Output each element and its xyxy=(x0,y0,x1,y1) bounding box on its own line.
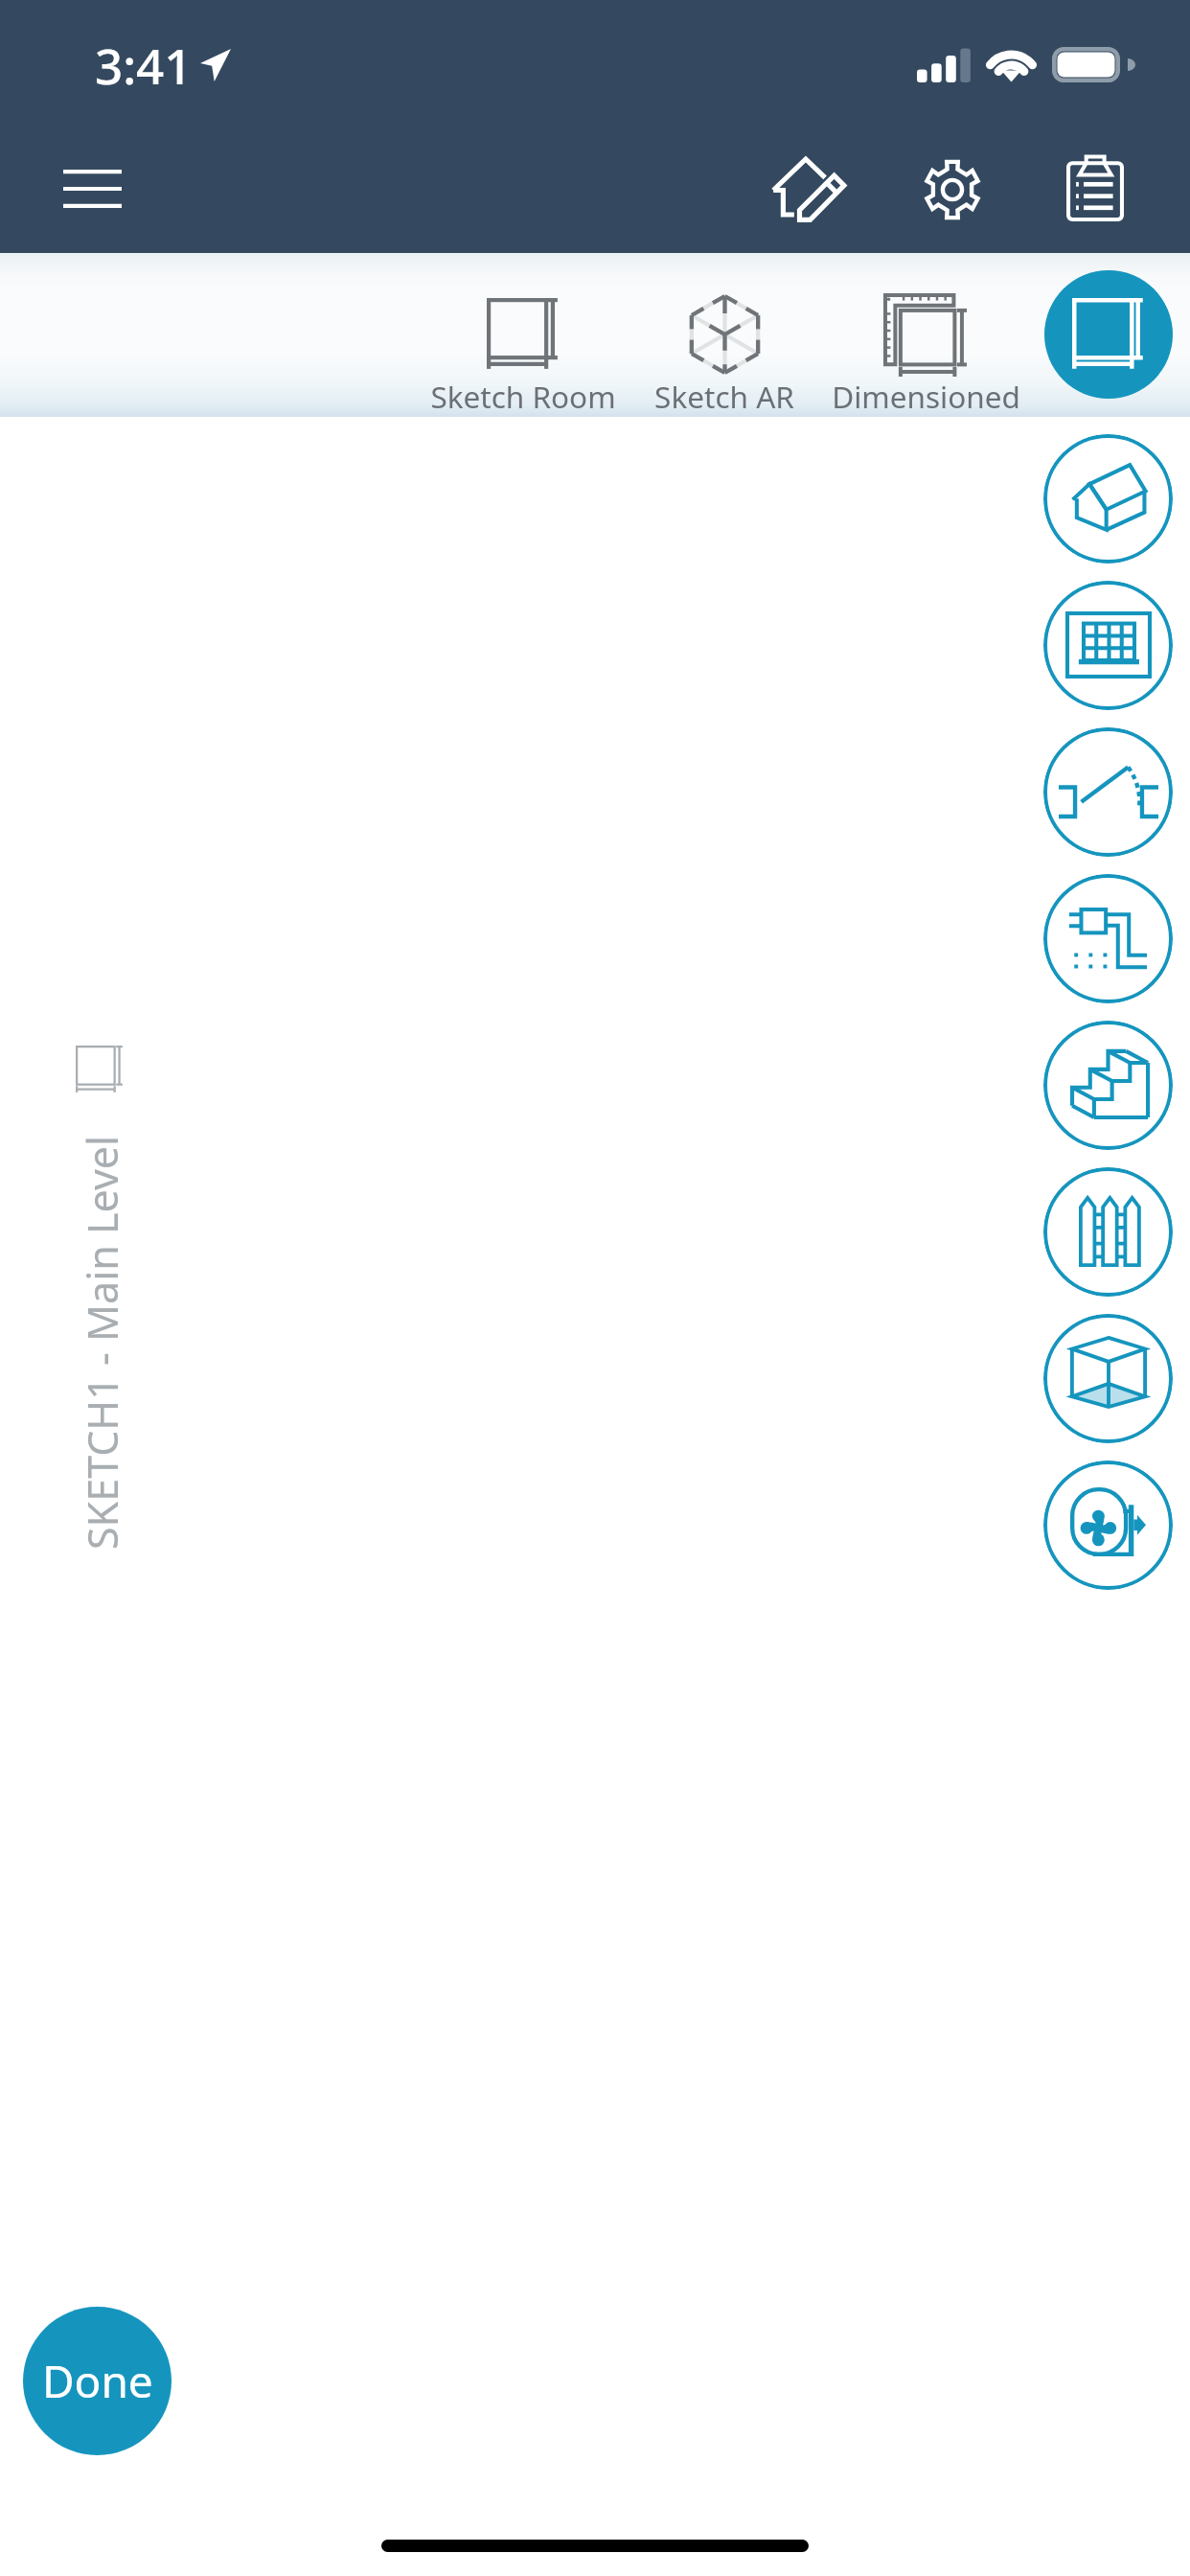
button[interactable]: Dimensioned xyxy=(820,254,1031,417)
staticText: Sketch AR xyxy=(654,376,794,417)
staticText: Dimensioned xyxy=(832,376,1020,417)
button[interactable]: Electrical xyxy=(1043,874,1173,1003)
button[interactable]: Fence xyxy=(1043,1167,1173,1297)
staticText: Done xyxy=(42,2351,153,2411)
button[interactable]: Menu xyxy=(34,132,150,245)
button[interactable]: Sketch Room xyxy=(418,254,629,417)
button[interactable]: Ventilation xyxy=(1043,1460,1173,1590)
button[interactable]: Volume xyxy=(1043,1314,1173,1443)
button[interactable]: Roof xyxy=(1043,434,1173,563)
button[interactable]: Stairs xyxy=(1043,1021,1173,1150)
staticText: Sketch Room xyxy=(430,376,616,417)
button[interactable]: Done xyxy=(23,2307,172,2455)
button[interactable]: Sketch AR xyxy=(619,254,830,417)
button[interactable]: Window xyxy=(1043,581,1173,710)
button[interactable]: Settings xyxy=(885,126,1019,253)
button[interactable]: Sketch xyxy=(742,126,876,253)
button[interactable]: Door xyxy=(1043,727,1173,857)
staticText: SKETCH1 - Main Level xyxy=(74,1135,130,1550)
staticText: 3:41 xyxy=(95,32,193,98)
button[interactable]: Sketch Room, selected xyxy=(1044,270,1173,399)
button[interactable]: Notes xyxy=(1028,126,1162,253)
